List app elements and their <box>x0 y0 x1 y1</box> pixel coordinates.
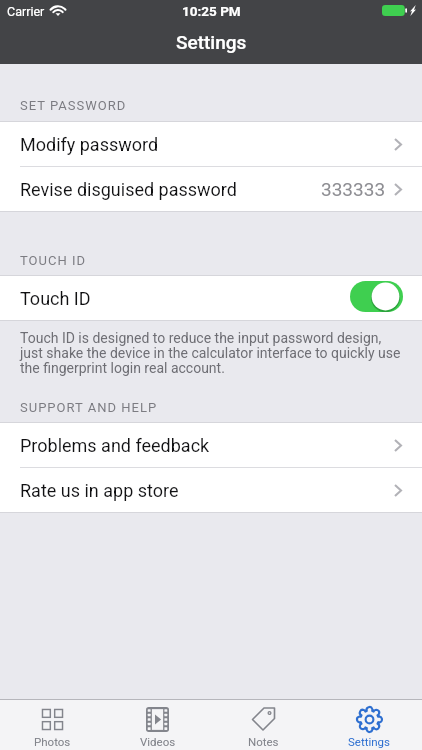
button[interactable]: Notes <box>210 700 316 750</box>
button[interactable]: Rate us in app store <box>0 468 422 512</box>
button[interactable]: Videos <box>105 700 210 750</box>
button[interactable]: Settings <box>316 700 422 750</box>
staticText: Settings <box>348 735 390 748</box>
other: Touch ID toggle <box>350 281 403 312</box>
staticText: Videos <box>140 735 176 748</box>
staticText: Carrier <box>7 4 45 19</box>
staticText: Settings <box>176 31 247 53</box>
button[interactable]: Revise disguised password <box>0 167 422 211</box>
staticText: SUPPORT AND HELP <box>20 400 158 415</box>
staticText: Revise disguised password <box>20 179 237 200</box>
staticText: TOUCH ID <box>20 253 86 268</box>
button[interactable]: Modify password <box>0 122 422 166</box>
staticText: 333333 <box>321 178 386 200</box>
staticText: 10:25 PM <box>182 3 241 19</box>
staticText: Problems and feedback <box>20 435 210 456</box>
staticText: Touch ID <box>20 288 91 309</box>
staticText: Touch ID is designed to reduce the input… <box>20 330 404 377</box>
button[interactable]: Photos <box>0 700 105 750</box>
button[interactable]: Problems and feedback <box>0 423 422 467</box>
staticText: Notes <box>248 735 279 748</box>
button[interactable]: Touch ID <box>0 276 422 320</box>
staticText: Photos <box>34 735 71 748</box>
staticText: SET PASSWORD <box>20 98 127 113</box>
staticText: Modify password <box>20 134 159 155</box>
staticText: Rate us in app store <box>20 480 179 501</box>
